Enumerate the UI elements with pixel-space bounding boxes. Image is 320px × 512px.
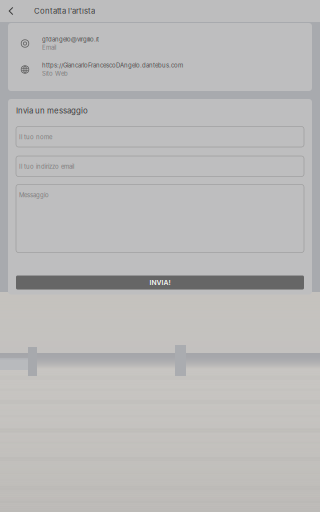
staticText: Sito Web	[42, 70, 68, 77]
button[interactable]: Il tuo nome	[16, 126, 304, 147]
button[interactable]: Messaggio	[16, 184, 304, 252]
staticText: Il tuo indirizzo email	[19, 163, 74, 170]
staticText: Messaggio	[19, 191, 49, 199]
staticText: Contatta l'artista	[34, 6, 95, 16]
staticText: INVIA!	[149, 278, 170, 287]
staticText: Il tuo nome	[19, 133, 52, 141]
button[interactable]: Back	[0, 0, 22, 22]
staticText: Email	[42, 44, 56, 51]
staticText: https://GiancarloFrancescoDAngelo.danteb…	[42, 62, 183, 69]
button[interactable]: gfdangelo@virgilio.it	[8, 30, 312, 56]
button[interactable]: https://GiancarloFrancescoDAngelo.danteb…	[8, 56, 312, 82]
button[interactable]: Il tuo indirizzo email	[16, 156, 304, 176]
button[interactable]: INVIA!	[16, 275, 304, 289]
staticText: gfdangelo@virgilio.it	[42, 36, 99, 43]
staticText: Invia un messaggio	[16, 106, 88, 115]
